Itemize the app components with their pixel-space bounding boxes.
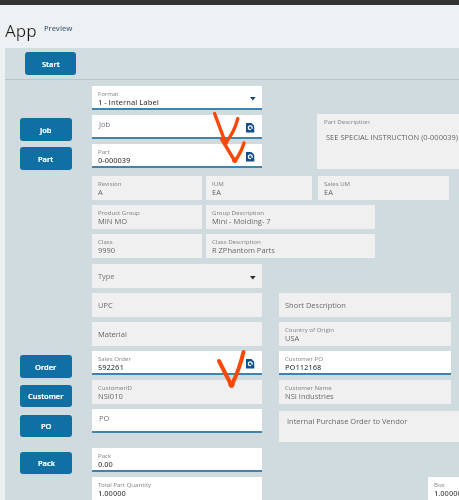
staticText: Job	[40, 125, 52, 135]
button[interactable]: Pack	[20, 452, 72, 474]
staticText: Country of Origin	[285, 325, 335, 333]
staticText: App	[5, 19, 37, 42]
staticText: NSI010	[98, 391, 123, 401]
staticText: PO	[99, 413, 110, 423]
staticText: 9990	[98, 245, 116, 255]
staticText: R ZPhantom Parts	[212, 245, 275, 255]
staticText: Pack	[38, 458, 55, 468]
staticText: Part	[98, 147, 110, 155]
staticText: Class	[98, 237, 113, 245]
button[interactable]: Part	[20, 147, 72, 170]
staticText: SEE SPECIAL INSTRUCTION (0-000039)	[326, 132, 459, 142]
button[interactable]	[92, 351, 262, 375]
staticText: A	[98, 187, 103, 197]
staticText: Group Description	[212, 208, 265, 216]
staticText: Box	[434, 480, 445, 488]
staticText: MIN MO	[98, 216, 128, 226]
staticText: Part	[38, 154, 54, 164]
staticText: Product Group	[98, 208, 140, 216]
staticText: Customer	[28, 391, 64, 401]
button[interactable]	[92, 293, 262, 317]
button[interactable]	[92, 264, 262, 288]
button[interactable]: Open dropdown	[247, 272, 259, 284]
button[interactable]	[92, 205, 202, 229]
button[interactable]	[317, 114, 459, 169]
button[interactable]	[206, 176, 312, 200]
button[interactable]	[92, 86, 262, 110]
button[interactable]: Order	[20, 355, 72, 378]
staticText: PO112168	[285, 362, 322, 372]
button[interactable]: Job	[20, 118, 72, 141]
staticText: Total Part Quantity	[98, 480, 152, 488]
staticText: 1 - Internal Label	[98, 97, 159, 107]
button[interactable]	[206, 205, 375, 229]
staticText: CustomerID	[98, 383, 133, 391]
button[interactable]: PO	[20, 415, 72, 437]
staticText: EA	[212, 187, 221, 197]
button[interactable]	[279, 380, 451, 404]
staticText: Class Description	[212, 237, 261, 245]
staticText: Part Description	[324, 117, 370, 125]
button[interactable]	[92, 144, 262, 168]
staticText: Preview	[44, 23, 73, 33]
staticText: 0-000039	[98, 155, 131, 165]
button[interactable]	[279, 351, 451, 375]
button[interactable]	[279, 293, 451, 317]
button[interactable]	[318, 176, 449, 200]
staticText: Order	[35, 362, 57, 372]
staticText: Sales UM	[324, 179, 351, 187]
button[interactable]	[92, 234, 202, 258]
staticText: Format	[98, 89, 119, 97]
button[interactable]	[92, 115, 262, 139]
button[interactable]: Lookup	[244, 150, 258, 164]
staticText: Revision	[98, 179, 122, 187]
button[interactable]: Lookup	[244, 121, 258, 135]
staticText: Type	[98, 271, 115, 281]
staticText: 592261	[98, 362, 124, 372]
button[interactable]	[279, 411, 459, 442]
button[interactable]	[92, 477, 262, 500]
button[interactable]: Open dropdown	[247, 93, 259, 105]
staticText: 0.00	[98, 459, 113, 469]
staticText: UPC	[98, 300, 113, 310]
staticText: Sales Order	[98, 354, 131, 362]
staticText: PO	[41, 421, 52, 431]
button[interactable]	[92, 380, 262, 404]
staticText: IUM	[212, 179, 224, 187]
staticText: Mini - Molding- 7	[212, 216, 271, 226]
staticText: Internal Purchase Order to Vendor	[287, 416, 408, 426]
button[interactable]	[92, 176, 202, 200]
staticText: Job	[99, 119, 111, 129]
button[interactable]: Start	[25, 52, 76, 75]
button[interactable]	[279, 322, 451, 346]
staticText: Start	[42, 59, 60, 69]
staticText: Customer Name	[285, 383, 332, 391]
button[interactable]	[428, 477, 459, 500]
button[interactable]: Lookup	[244, 357, 258, 371]
button[interactable]	[206, 234, 375, 258]
staticText: Material	[98, 329, 127, 339]
button[interactable]	[92, 322, 262, 346]
staticText: NSI Industries	[285, 391, 334, 401]
staticText: Pack	[98, 451, 112, 459]
staticText: Short Description	[285, 300, 346, 310]
staticText: EA	[324, 187, 333, 197]
staticText: 1.00000	[434, 488, 459, 498]
button[interactable]: Customer	[20, 385, 72, 407]
staticText: USA	[285, 333, 300, 343]
staticText: 1.00000	[98, 488, 126, 498]
button[interactable]	[92, 448, 262, 472]
button[interactable]	[92, 409, 262, 433]
staticText: Customer PO	[285, 354, 323, 362]
